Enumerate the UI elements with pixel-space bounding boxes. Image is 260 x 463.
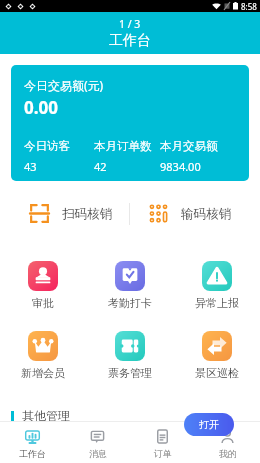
staticText: 我的 <box>219 448 237 459</box>
button[interactable]: 票务管理 <box>86 328 173 380</box>
staticText: 今日交易额(元) <box>24 77 104 93</box>
staticText: 工作台 <box>109 32 151 50</box>
staticText: 输码核销 <box>181 206 231 222</box>
staticText: 43 <box>24 159 37 174</box>
staticText: 9834.00 <box>160 159 201 174</box>
staticText: 今日访客 <box>24 139 70 153</box>
staticText: 其他管理 <box>22 408 70 423</box>
button[interactable]: 今日交易额(元) <box>11 65 249 181</box>
button[interactable]: 工作台 <box>0 422 65 463</box>
button[interactable]: 订单 <box>130 422 195 463</box>
staticText: 新增会员 <box>21 366 65 380</box>
button[interactable]: 景区巡检 <box>173 328 260 380</box>
button[interactable]: 考勤打卡 <box>86 258 173 310</box>
staticText: 8:58 <box>241 1 257 12</box>
button[interactable]: 扫码核销 <box>11 188 129 239</box>
staticText: 本月交易额 <box>160 139 218 153</box>
button[interactable]: 输码核销 <box>130 188 249 239</box>
staticText: 考勤打卡 <box>108 296 152 310</box>
staticText: 本月订单数 <box>94 139 152 153</box>
staticText: 景区巡检 <box>195 366 239 380</box>
staticText: 订单 <box>154 448 172 459</box>
button[interactable]: 消息 <box>65 422 130 463</box>
staticText: 票务管理 <box>108 366 152 380</box>
button[interactable]: 打开 <box>184 413 234 436</box>
staticText: 扫码核销 <box>62 206 112 222</box>
button[interactable]: 我的 <box>195 422 260 463</box>
staticText: 1 / 3 <box>119 17 141 31</box>
button[interactable]: 新增会员 <box>0 328 86 380</box>
staticText: 42 <box>94 159 107 174</box>
staticText: 异常上报 <box>195 296 239 310</box>
staticText: 打开 <box>199 418 219 431</box>
staticText: 审批 <box>32 296 54 310</box>
button[interactable]: 审批 <box>0 258 86 310</box>
staticText: 工作台 <box>19 448 46 459</box>
staticText: 消息 <box>89 448 107 459</box>
button[interactable]: 异常上报 <box>173 258 260 310</box>
staticText: 0.00 <box>24 96 58 119</box>
